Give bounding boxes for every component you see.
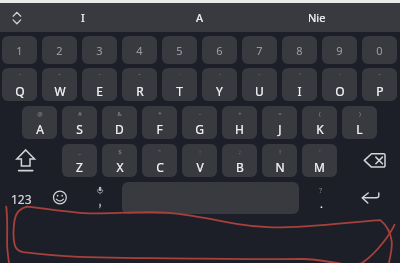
staticText: 2 bbox=[56, 43, 63, 58]
staticText: U bbox=[255, 83, 264, 99]
staticText: 9 bbox=[336, 43, 343, 58]
staticText: A bbox=[36, 121, 44, 137]
button[interactable]: 9 bbox=[322, 36, 357, 64]
button[interactable]: + bbox=[222, 106, 257, 139]
button[interactable]: 123 bbox=[2, 182, 40, 214]
button[interactable]: ( bbox=[302, 106, 337, 139]
staticText: 6 bbox=[216, 43, 223, 58]
button[interactable]: & bbox=[102, 106, 137, 139]
staticText: ˙ bbox=[179, 72, 181, 80]
staticText: Nie bbox=[308, 10, 326, 25]
staticText: # bbox=[78, 110, 82, 118]
staticText: ˇ bbox=[138, 72, 141, 80]
staticText: M bbox=[314, 159, 325, 175]
staticText: " bbox=[158, 148, 161, 156]
button[interactable]: ˜ bbox=[82, 68, 117, 101]
button[interactable]: ˇ bbox=[122, 68, 157, 101]
staticText: ; bbox=[239, 148, 241, 156]
staticText: 3 bbox=[96, 43, 103, 58]
staticText: I bbox=[297, 83, 302, 99]
staticText: 0 bbox=[376, 43, 383, 58]
button[interactable]: Enter bbox=[348, 182, 398, 214]
staticText: 7 bbox=[256, 43, 263, 58]
button[interactable]: 2 bbox=[42, 36, 77, 64]
button[interactable]: _ bbox=[62, 144, 97, 177]
staticText: & bbox=[117, 110, 122, 118]
staticText: ´ bbox=[219, 72, 221, 80]
staticText: O bbox=[335, 83, 345, 99]
staticText: 123 bbox=[11, 191, 32, 207]
button[interactable]: Shift bbox=[2, 144, 59, 177]
button[interactable]: " bbox=[142, 144, 177, 177]
staticText: ˋ bbox=[19, 72, 21, 80]
button[interactable]: I bbox=[25, 3, 141, 32]
staticText: E bbox=[96, 83, 103, 99]
staticText: W bbox=[54, 83, 66, 99]
button[interactable]: Space bbox=[122, 182, 299, 214]
staticText: N bbox=[275, 159, 285, 175]
button[interactable]: 8 bbox=[282, 36, 317, 64]
staticText: 1 bbox=[16, 43, 23, 58]
staticText: ˝ bbox=[378, 72, 381, 80]
staticText: @ bbox=[37, 110, 43, 118]
button[interactable]: $ bbox=[102, 144, 137, 177]
button[interactable]: ¨ bbox=[322, 68, 357, 101]
button[interactable]: ! bbox=[262, 144, 297, 177]
button[interactable]: 7 bbox=[242, 36, 277, 64]
button[interactable]: 6 bbox=[202, 36, 237, 64]
button[interactable]: Emoji bbox=[42, 182, 78, 214]
button[interactable]: 5 bbox=[162, 36, 197, 64]
button[interactable]: ´ bbox=[202, 68, 237, 101]
staticText: X bbox=[116, 159, 124, 175]
button[interactable]: * bbox=[142, 106, 177, 139]
staticText: Q bbox=[15, 83, 25, 99]
button[interactable]: A bbox=[142, 3, 258, 32]
button[interactable]: Expand suggestions bbox=[0, 3, 33, 32]
button[interactable]: Nie bbox=[259, 3, 375, 32]
staticText: C bbox=[156, 159, 164, 175]
button[interactable]: Backspace bbox=[342, 144, 399, 177]
staticText: ! bbox=[279, 148, 281, 156]
button[interactable]: ˋ bbox=[2, 68, 37, 101]
button[interactable]: ˆ bbox=[42, 68, 77, 101]
staticText: 5 bbox=[176, 43, 183, 58]
staticText: ˘ bbox=[258, 72, 261, 80]
staticText: H bbox=[235, 121, 244, 137]
staticText: J bbox=[278, 121, 282, 137]
staticText: ' bbox=[319, 148, 321, 156]
staticText: S bbox=[76, 121, 83, 137]
staticText: T bbox=[176, 83, 183, 99]
staticText: P bbox=[376, 83, 384, 99]
staticText: : bbox=[199, 148, 201, 156]
button[interactable]: 3 bbox=[82, 36, 117, 64]
staticText: F bbox=[156, 121, 163, 137]
button[interactable]: Voice input bbox=[82, 182, 118, 214]
button[interactable]: : bbox=[182, 144, 217, 177]
button[interactable]: ; bbox=[222, 144, 257, 177]
staticText: - bbox=[199, 110, 201, 118]
button[interactable]: @ bbox=[22, 106, 57, 139]
button[interactable]: # bbox=[62, 106, 97, 139]
button[interactable]: - bbox=[182, 106, 217, 139]
staticText: ( bbox=[319, 110, 321, 118]
button[interactable]: ? bbox=[303, 182, 339, 214]
staticText: B bbox=[236, 159, 244, 175]
staticText: ¨ bbox=[338, 72, 342, 80]
staticText: D bbox=[115, 121, 124, 137]
button[interactable]: ˘ bbox=[242, 68, 277, 101]
button[interactable]: ˙ bbox=[162, 68, 197, 101]
button[interactable]: ˚ bbox=[282, 68, 317, 101]
staticText: _ bbox=[78, 148, 81, 156]
staticText: Y bbox=[216, 83, 223, 99]
button[interactable]: 4 bbox=[122, 36, 157, 64]
button[interactable]: ˝ bbox=[362, 68, 397, 101]
button[interactable]: = bbox=[262, 106, 297, 139]
staticText: 8 bbox=[296, 43, 303, 58]
staticText: + bbox=[238, 110, 242, 118]
staticText: K bbox=[316, 121, 324, 137]
button[interactable]: 0 bbox=[362, 36, 397, 64]
staticText: I bbox=[81, 10, 85, 25]
button[interactable]: 1 bbox=[2, 36, 37, 64]
button[interactable]: ) bbox=[342, 106, 377, 139]
button[interactable]: ' bbox=[302, 144, 337, 177]
